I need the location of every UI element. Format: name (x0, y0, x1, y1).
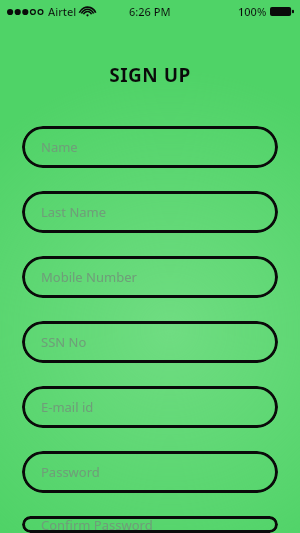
button[interactable]: Name (22, 126, 278, 168)
button[interactable]: E-mail id (22, 386, 278, 428)
staticText: Last Name (41, 203, 107, 221)
staticText: SIGN UP (0, 62, 300, 88)
staticText: Airtel (48, 4, 77, 19)
button[interactable]: Confirm Password (22, 516, 278, 533)
staticText: Mobile Number (41, 268, 137, 286)
button[interactable]: Last Name (22, 191, 278, 233)
staticText: E-mail id (41, 398, 94, 416)
staticText: 6:26 PM (129, 4, 171, 19)
button[interactable]: Mobile Number (22, 256, 278, 298)
button[interactable]: Password (22, 451, 278, 493)
button[interactable]: SSN No (22, 321, 278, 363)
staticText: Password (41, 463, 100, 481)
staticText: Confirm Password (41, 516, 153, 533)
staticText: SSN No (41, 333, 87, 351)
staticText: Name (41, 138, 78, 156)
staticText: 100% (238, 4, 267, 19)
